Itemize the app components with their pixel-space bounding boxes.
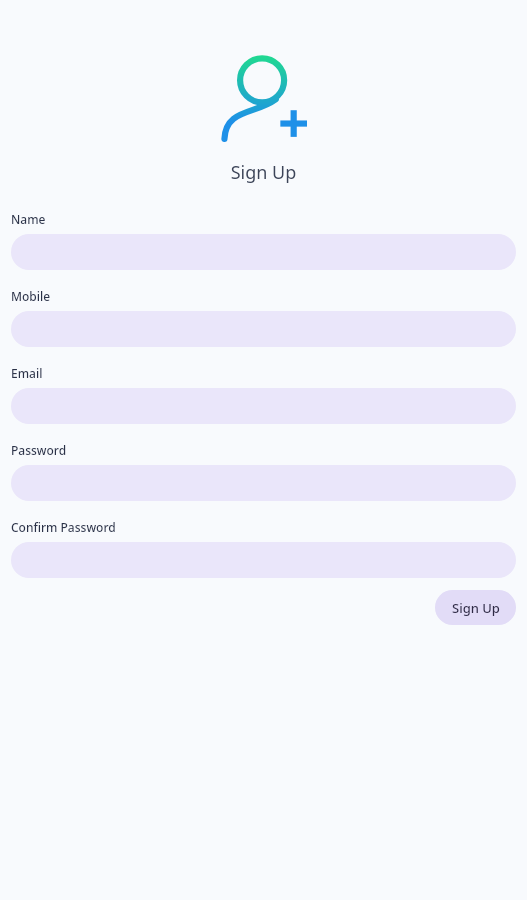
staticText: Email <box>11 365 43 381</box>
staticText: Password <box>11 442 67 458</box>
staticText: Confirm Password <box>11 519 116 535</box>
button[interactable]: Sign Up <box>435 590 516 625</box>
staticText: Sign Up <box>452 599 500 617</box>
staticText: Sign Up <box>0 160 527 185</box>
other: Sign up <box>221 52 307 142</box>
staticText: Mobile <box>11 288 51 304</box>
staticText: Name <box>11 211 46 227</box>
